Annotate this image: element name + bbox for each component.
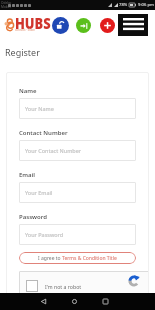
button[interactable]: Register: [100, 18, 115, 33]
staticText: 9:06 pm: [138, 2, 154, 8]
staticText: Your Name: [25, 105, 54, 112]
staticText: I agree to: [38, 255, 62, 262]
button[interactable]: Your Contact Number: [19, 140, 136, 161]
staticText: Email: [19, 171, 36, 179]
staticText: HUBS: [15, 12, 51, 34]
button[interactable]: Your Email: [19, 182, 136, 203]
button[interactable]: Home: [65, 293, 83, 310]
button[interactable]: I'm not a robot: [19, 271, 149, 301]
staticText: I'm not a robot: [45, 283, 82, 290]
staticText: Odeka Mobile: [1, 1, 12, 9]
button[interactable]: Your Name: [19, 98, 136, 119]
staticText: Password: [19, 213, 48, 221]
staticText: Name: [19, 87, 37, 95]
staticText: Your Email: [25, 189, 53, 196]
button[interactable]: Recents: [96, 293, 114, 310]
staticText: Terms & Condition Title: [62, 255, 117, 262]
staticText: Register: [5, 46, 40, 58]
staticText: Contact Number: [19, 129, 68, 137]
button[interactable]: Unlock: [52, 17, 69, 34]
staticText: connect · share: [15, 28, 35, 32]
button[interactable]: Menu: [118, 14, 148, 36]
button[interactable]: I agree to: [19, 252, 136, 264]
staticText: 78%: [119, 2, 128, 8]
staticText: Your Password: [25, 231, 64, 238]
button[interactable]: Your Password: [19, 224, 136, 245]
staticText: Your Contact Number: [25, 147, 82, 154]
button[interactable]: Back: [34, 293, 52, 310]
button[interactable]: Login: [76, 18, 91, 33]
